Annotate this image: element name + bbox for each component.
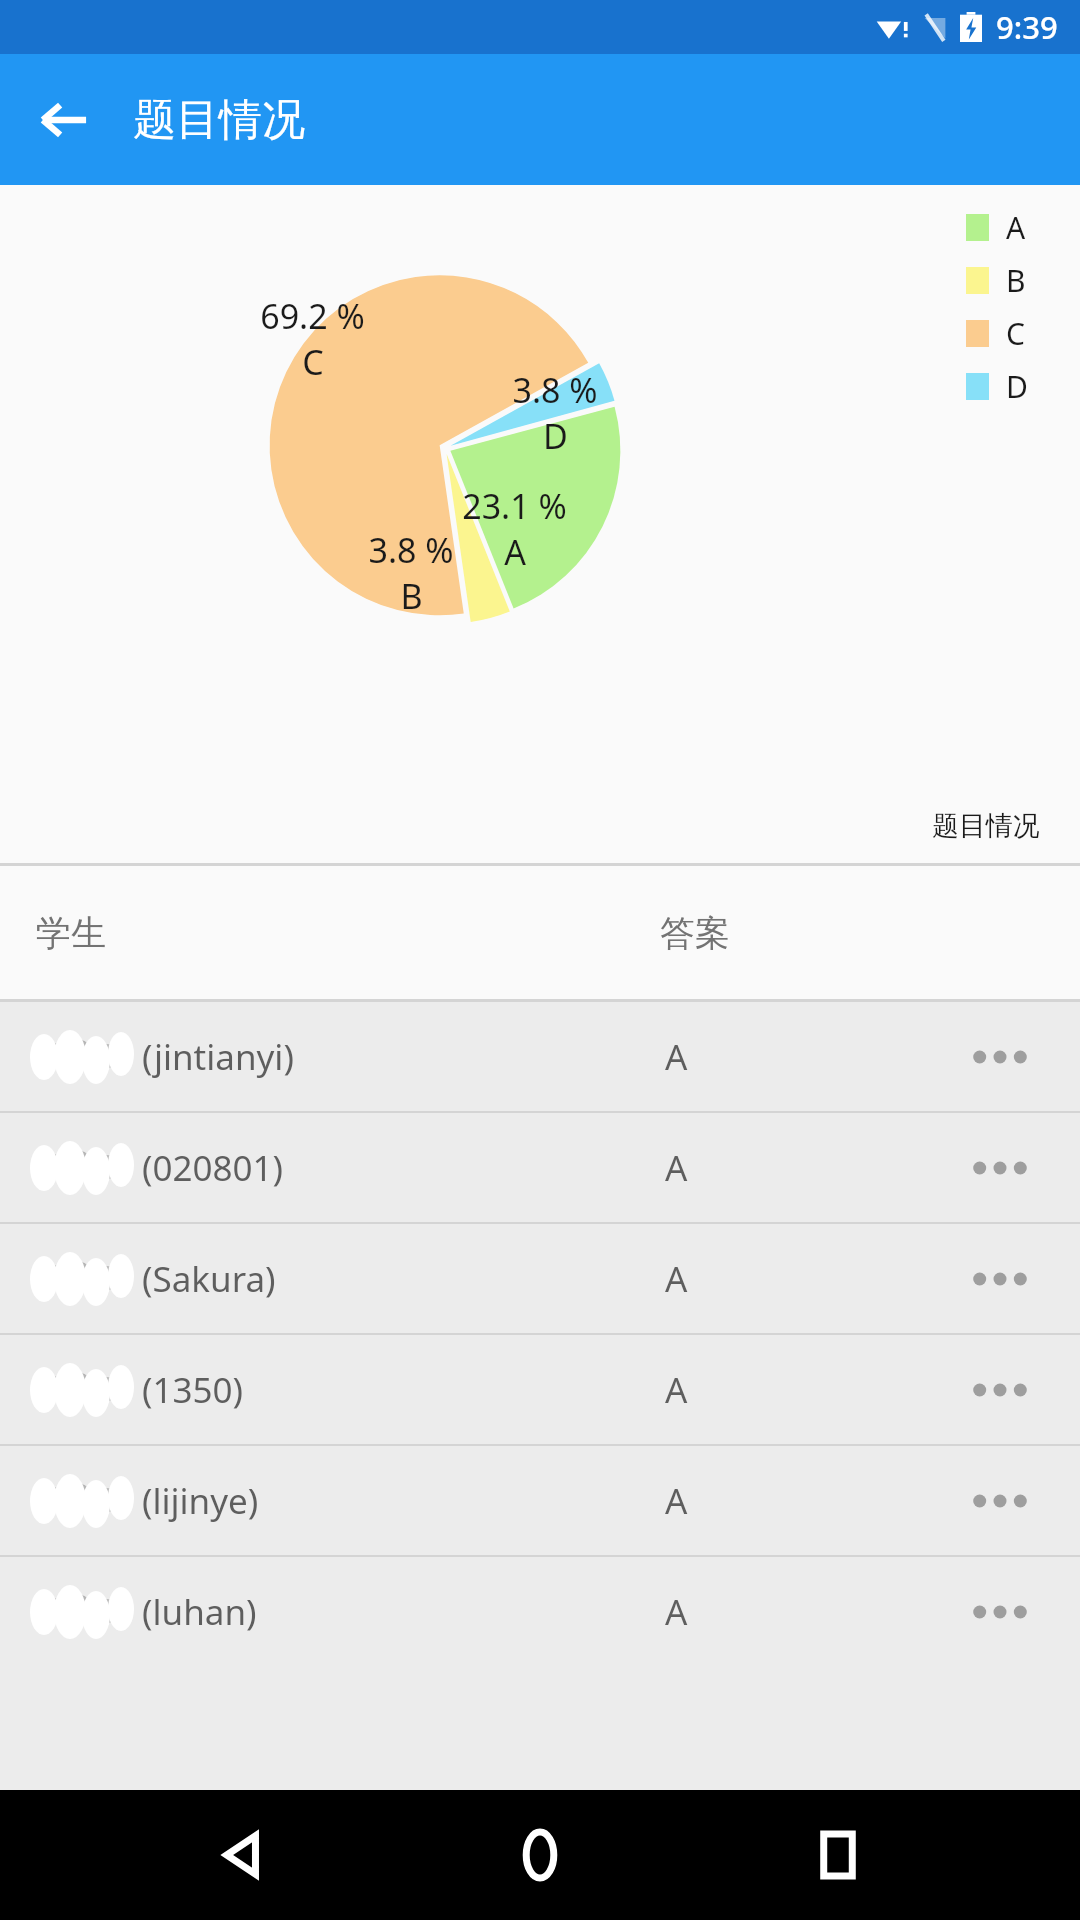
button[interactable]: (luhan) <box>0 1557 1080 1666</box>
button[interactable]: (1350) <box>0 1335 1080 1444</box>
button[interactable]: More options <box>960 1239 1040 1319</box>
staticText: 9:39 <box>996 6 1058 48</box>
staticText: (Sakura) <box>142 1255 276 1303</box>
button[interactable]: More options <box>960 1461 1040 1541</box>
staticText: 3.8 % <box>512 367 598 413</box>
staticText: D <box>543 413 568 459</box>
button[interactable]: More options <box>960 1128 1040 1208</box>
button[interactable]: Recent apps <box>783 1800 893 1910</box>
button[interactable]: (jintianyi) <box>0 1002 1080 1111</box>
staticText: A <box>665 1366 688 1414</box>
staticText: (1350) <box>142 1366 244 1414</box>
staticText: 题目情况 <box>932 809 1040 843</box>
staticText: A <box>665 1255 688 1303</box>
staticText: 学生 <box>36 911 106 955</box>
staticText: D <box>1006 366 1028 407</box>
button[interactable]: Home <box>485 1800 595 1910</box>
button[interactable]: More options <box>960 1572 1040 1652</box>
staticText: 69.2 % <box>260 293 365 339</box>
staticText: A <box>1006 207 1026 248</box>
staticText: 答案 <box>660 911 730 955</box>
staticText: (luhan) <box>142 1588 257 1636</box>
staticText: A <box>665 1033 688 1081</box>
button[interactable]: (020801) <box>0 1113 1080 1222</box>
staticText: 题目情况 <box>133 93 305 147</box>
staticText: A <box>665 1477 688 1525</box>
button[interactable]: More options <box>960 1017 1040 1097</box>
staticText: C <box>1006 313 1025 354</box>
staticText: A <box>665 1144 688 1192</box>
button[interactable]: Back <box>188 1800 298 1910</box>
staticText: (lijinye) <box>142 1477 259 1525</box>
staticText: 23.1 % <box>462 483 567 529</box>
staticText: B <box>1006 260 1026 301</box>
staticText: A <box>504 529 526 575</box>
staticText: B <box>400 573 423 619</box>
button[interactable]: Back <box>22 78 106 162</box>
button[interactable]: (lijinye) <box>0 1446 1080 1555</box>
staticText: (jintianyi) <box>142 1033 294 1081</box>
button[interactable]: (Sakura) <box>0 1224 1080 1333</box>
staticText: 3.8 % <box>368 527 454 573</box>
staticText: (020801) <box>142 1144 284 1192</box>
staticText: C <box>302 339 324 385</box>
button[interactable]: More options <box>960 1350 1040 1430</box>
staticText: A <box>665 1588 688 1636</box>
